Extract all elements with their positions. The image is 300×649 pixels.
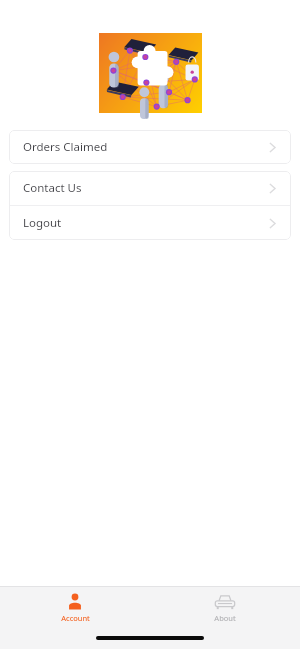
- staticText: Account: [61, 613, 90, 623]
- staticText: Logout: [23, 215, 62, 231]
- staticText: Orders Claimed: [23, 139, 108, 155]
- button[interactable]: Logout: [9, 206, 291, 240]
- staticText: Contact Us: [23, 180, 82, 196]
- button[interactable]: Contact Us: [9, 171, 291, 205]
- button[interactable]: Account: [40, 587, 110, 627]
- button[interactable]: About: [190, 587, 260, 627]
- button[interactable]: Orders Claimed: [9, 130, 291, 164]
- staticText: About: [214, 613, 236, 623]
